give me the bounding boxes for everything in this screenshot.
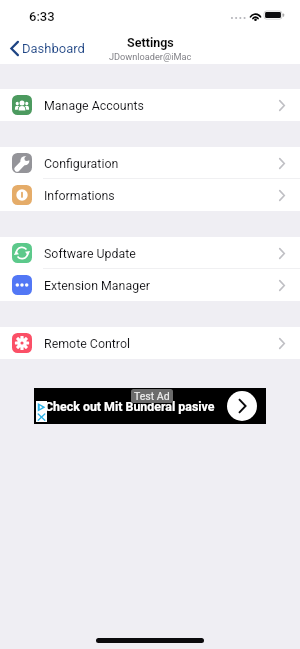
button[interactable]: Check out Mit Bunderal pasive xyxy=(34,388,266,424)
staticText: Remote Control xyxy=(44,336,131,351)
staticText: Software Update xyxy=(44,246,136,261)
staticText: Settings xyxy=(127,35,174,50)
button[interactable]: Manage Accounts xyxy=(0,89,300,121)
staticText: Configuration xyxy=(44,156,119,171)
staticText: Test Ad xyxy=(134,390,170,402)
button[interactable]: Informations xyxy=(0,179,300,211)
staticText: Check out Mit Bunderal pasive xyxy=(45,399,215,414)
staticText: Dashboard xyxy=(22,41,85,56)
button[interactable]: Dashboard xyxy=(7,38,88,59)
button[interactable]: Software Update xyxy=(0,237,300,269)
button[interactable]: Extension Manager xyxy=(0,269,300,301)
staticText: Extension Manager xyxy=(44,278,150,293)
staticText: JDownloader@iMac xyxy=(109,51,192,62)
staticText: Informations xyxy=(44,188,115,203)
staticText: Manage Accounts xyxy=(44,98,144,113)
staticText: 6:33 xyxy=(29,9,55,24)
button[interactable]: Configuration xyxy=(0,147,300,179)
button[interactable]: Remote Control xyxy=(0,327,300,359)
